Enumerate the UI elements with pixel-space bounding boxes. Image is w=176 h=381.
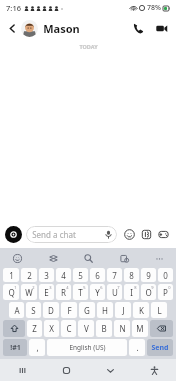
button[interactable]: Y [90,284,105,300]
button[interactable]: T [73,284,88,300]
button[interactable]: Back [88,359,132,381]
button[interactable]: Video call [151,18,171,38]
button[interactable]: . [129,339,145,356]
staticText: , [36,342,39,353]
staticText: 3 [44,270,49,281]
staticText: 2 [27,270,32,281]
staticText: Send [151,343,169,353]
staticText: 6 [95,270,100,281]
staticText: Y [95,287,100,298]
button[interactable]: 8 [124,268,139,282]
button[interactable]: 2 [21,268,37,282]
button[interactable]: Mason profile [21,20,38,37]
button[interactable]: Emoji keyboard [10,251,24,265]
staticText: 8 [129,270,134,281]
staticText: X [49,323,54,334]
button[interactable]: K [133,302,149,318]
button[interactable]: English (US) [47,339,127,356]
staticText: L [157,305,162,316]
button[interactable]: Emoji [122,227,137,242]
button[interactable]: G [79,302,95,318]
staticText: 78% [147,3,161,13]
button[interactable]: , [29,339,45,356]
button[interactable]: Back [5,21,19,35]
staticText: 7 [117,285,120,290]
other: Voice message [104,230,113,239]
button[interactable]: D [43,302,59,318]
button[interactable]: J [115,302,131,318]
staticText: F [67,305,72,316]
staticText: Send a chat [32,229,76,240]
button[interactable]: F [61,302,77,318]
button[interactable]: Send [147,339,173,356]
staticText: . [136,342,139,353]
staticText: M [136,323,144,334]
button[interactable]: Camera [5,226,22,243]
staticText: E [44,287,49,298]
button[interactable]: S [26,302,41,318]
button[interactable]: Backspace [150,320,173,337]
staticText: 5 [83,285,86,290]
button[interactable]: Clipboard [117,251,131,265]
staticText: K [139,305,144,316]
staticText: 5 [78,270,83,281]
button[interactable]: 4 [56,268,71,282]
button[interactable]: Games [156,227,171,242]
staticText: R [61,287,66,298]
staticText: H [102,305,108,316]
button[interactable]: L [151,302,167,318]
button[interactable]: 6 [90,268,105,282]
button[interactable]: Search [81,251,95,265]
button[interactable]: O [141,284,156,300]
button[interactable]: More options [152,251,166,265]
button[interactable]: 1 [3,268,19,282]
button[interactable]: H [97,302,113,318]
button[interactable]: B [96,320,112,337]
button[interactable]: Recents [0,359,44,381]
button[interactable]: R [56,284,71,300]
button[interactable]: Accessibility [132,359,176,381]
staticText: J [122,305,125,316]
staticText: 6 [100,285,103,290]
button[interactable]: U [107,284,122,300]
button[interactable]: 3 [39,268,54,282]
button[interactable]: V [78,320,94,337]
staticText: W [25,287,33,298]
button[interactable]: Stickers [139,227,154,242]
button[interactable]: C [61,320,76,337]
staticText: TODAY [79,43,98,50]
staticText: T [78,287,83,298]
button[interactable]: Home [44,359,88,381]
staticText: 0 [163,270,168,281]
button[interactable]: Z [27,320,42,337]
staticText: 3 [49,285,52,290]
button[interactable]: W [21,284,37,300]
staticText: 0 [168,285,171,290]
button[interactable]: P [158,284,173,300]
button[interactable]: A [9,302,24,318]
button[interactable]: 7 [107,268,122,282]
button[interactable]: 9 [141,268,156,282]
staticText: O [145,287,152,298]
staticText: 4 [61,270,66,281]
staticText: C [66,323,72,334]
staticText: I [130,287,133,298]
button[interactable]: E [39,284,54,300]
staticText: 8 [134,285,137,290]
staticText: P [163,287,168,298]
button[interactable]: N [114,320,130,337]
button[interactable]: Q [3,284,19,300]
button[interactable]: X [44,320,59,337]
button[interactable]: !#1 [3,339,27,356]
button[interactable]: 5 [73,268,88,282]
button[interactable]: I [124,284,139,300]
button[interactable]: Themes [46,251,60,265]
button[interactable]: M [132,320,148,337]
staticText: G [84,305,90,316]
staticText: 9 [151,285,154,290]
button[interactable]: Voice call [128,18,148,38]
button[interactable]: Shift [3,320,25,337]
staticText: 2 [32,285,35,290]
button[interactable]: 0 [158,268,173,282]
button[interactable]: Send a chat [26,226,117,243]
